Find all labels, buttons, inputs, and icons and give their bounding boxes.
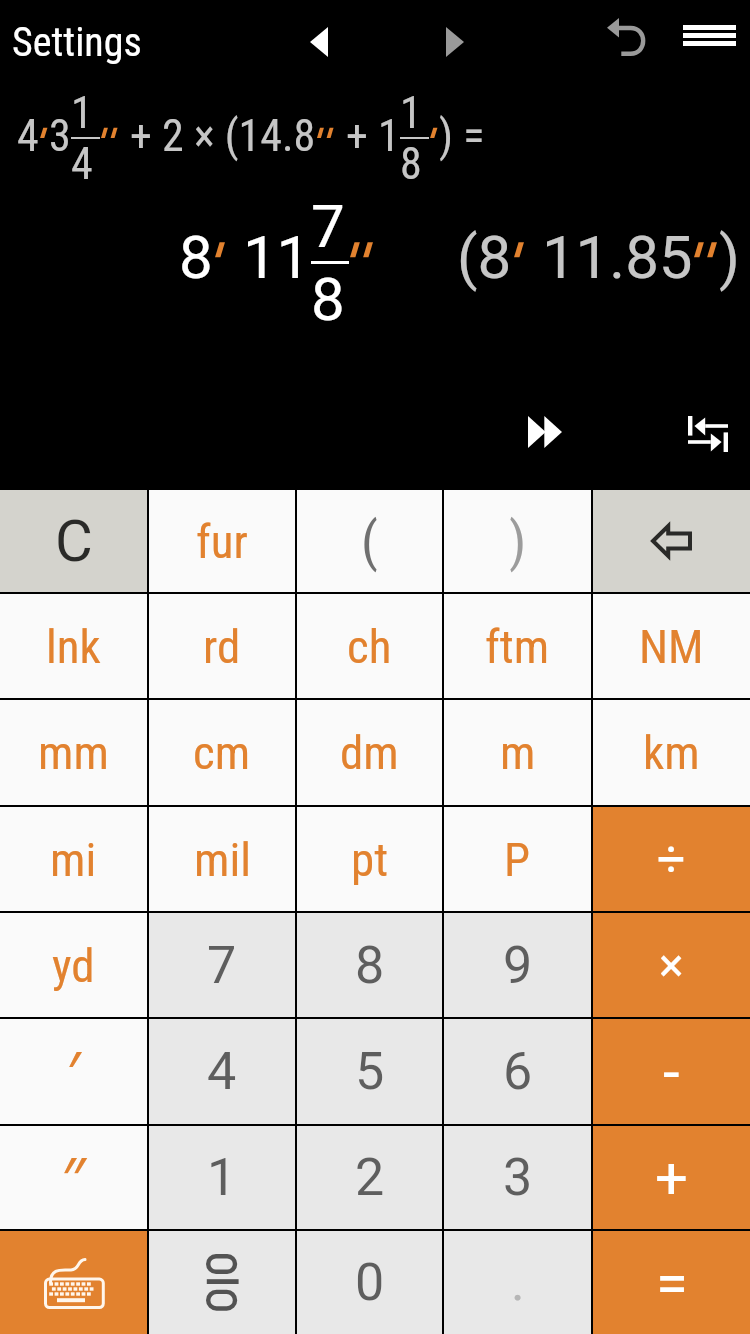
staticText: × [659,938,684,992]
staticText: + 1 [336,110,400,162]
button[interactable]: Fraction [149,1231,295,1334]
staticText: pt [351,832,389,887]
staticText: mil [194,832,251,887]
button[interactable]: fur [149,490,295,592]
staticText: cm [193,725,251,780]
button[interactable]: 6 [444,1019,591,1124]
button[interactable]: mil [149,807,295,911]
button[interactable]: ÷ [593,807,750,911]
staticText: 3 [49,110,71,162]
staticText: . [511,1252,525,1313]
button[interactable]: m [444,700,591,805]
staticText: NM [639,619,704,674]
staticText: dm [340,725,399,780]
button[interactable]: Convert units [675,402,741,466]
button[interactable]: 5 [297,1019,442,1124]
button[interactable]: Fast forward [512,400,578,464]
staticText: C [55,507,93,575]
button[interactable]: mm [0,700,147,805]
button[interactable]: dm [297,700,442,805]
staticText: 4 [17,110,39,162]
staticText: ÷ [657,830,686,889]
staticText: 6 [503,1041,533,1102]
staticText: + [655,1144,688,1212]
staticText: 8 [355,935,385,996]
staticText: lnk [46,619,101,674]
button[interactable]: km [593,700,750,805]
button[interactable]: ″ [0,1126,147,1229]
staticText: 8 [311,264,345,334]
staticText: = [656,1249,688,1317]
staticText: 7 [207,935,237,996]
button[interactable]: mi [0,807,147,911]
button[interactable]: 4 [149,1019,295,1124]
staticText: 0 [355,1252,385,1313]
button[interactable]: P [444,807,591,911]
staticText: Settings [12,19,142,66]
button[interactable]: Previous [292,10,346,74]
staticText: 11.85 [527,222,693,292]
button[interactable]: - [593,1019,750,1124]
button[interactable]: cm [149,700,295,805]
button[interactable]: 8 [297,913,442,1017]
staticText: 11 [228,222,311,292]
button[interactable]: 2 [297,1126,442,1229]
staticText: 7 [311,191,345,261]
staticText: ) [509,510,527,573]
staticText: + 2 × (14.8 [120,110,316,162]
staticText: fur [196,514,248,569]
staticText: ch [347,619,392,674]
staticText: 4 [207,1041,237,1102]
button[interactable]: ( [297,490,442,592]
button[interactable]: + [593,1126,750,1229]
button[interactable]: 0 [297,1231,442,1334]
button[interactable]: Keyboard [0,1231,147,1334]
button[interactable]: Next [428,10,482,74]
button[interactable]: ch [297,594,442,698]
button[interactable]: C [0,490,147,592]
button[interactable]: Menu [676,4,742,66]
staticText: - [663,1037,680,1107]
staticText: 9 [503,935,533,996]
staticText: ′ [67,1032,81,1111]
staticText: 1 [207,1147,237,1208]
staticText: m [500,725,536,780]
staticText: 3 [503,1147,533,1208]
staticText: ftm [485,619,550,674]
staticText: mi [50,832,97,887]
staticText: km [643,725,700,780]
staticText: ″ [62,1138,86,1217]
button[interactable]: ′ [0,1019,147,1124]
staticText: mm [38,725,109,780]
staticText: yd [52,938,95,993]
staticText: ) = [439,110,485,162]
button[interactable]: Undo [598,4,666,72]
button[interactable]: Settings [0,11,154,74]
staticText: 1 [71,87,93,138]
staticText: 5 [355,1041,385,1102]
button[interactable]: ) [444,490,591,592]
staticText: P [504,832,531,887]
button[interactable]: × [593,913,750,1017]
button[interactable]: Backspace [593,490,750,592]
button[interactable]: yd [0,913,147,1017]
staticText: 8 [179,222,213,292]
button[interactable]: lnk [0,594,147,698]
staticText: 1 [400,87,422,138]
button[interactable]: 1 [149,1126,295,1229]
staticText: (8 [457,222,512,292]
staticText: 8 [400,138,422,189]
button[interactable]: NM [593,594,750,698]
button[interactable]: 7 [149,913,295,1017]
staticText: ) [719,222,740,292]
button[interactable]: pt [297,807,442,911]
staticText: ( [361,510,378,573]
button[interactable]: = [593,1231,750,1334]
button[interactable]: ftm [444,594,591,698]
staticText: 2 [355,1147,385,1208]
button[interactable]: rd [149,594,295,698]
staticText: rd [203,619,241,674]
button[interactable]: 9 [444,913,591,1017]
button[interactable]: 3 [444,1126,591,1229]
